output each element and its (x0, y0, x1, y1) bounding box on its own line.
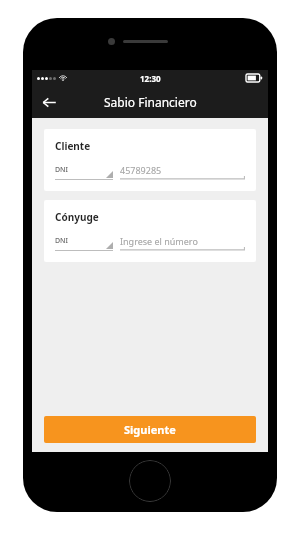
staticText: 12:30 (140, 73, 161, 84)
button[interactable]: 45789285 (120, 163, 245, 180)
staticText: Siguiente (124, 422, 176, 437)
staticText: Ingrese el número (120, 235, 198, 247)
button[interactable]: Cónyuge (44, 200, 256, 262)
staticText: 45789285 (120, 164, 162, 176)
staticText: Cliente (55, 139, 91, 153)
staticText: DNI (55, 236, 69, 246)
button[interactable]: Ingrese el número (120, 234, 245, 251)
staticText: DNI (55, 165, 69, 175)
button[interactable]: Cliente (44, 129, 256, 191)
staticText: Cónyuge (55, 210, 99, 224)
button[interactable]: Siguiente (44, 416, 256, 443)
button[interactable]: DNI (55, 234, 113, 251)
button[interactable]: DNI (55, 163, 113, 180)
button[interactable]: Back (32, 86, 66, 118)
staticText: Sabio Financiero (104, 94, 197, 110)
